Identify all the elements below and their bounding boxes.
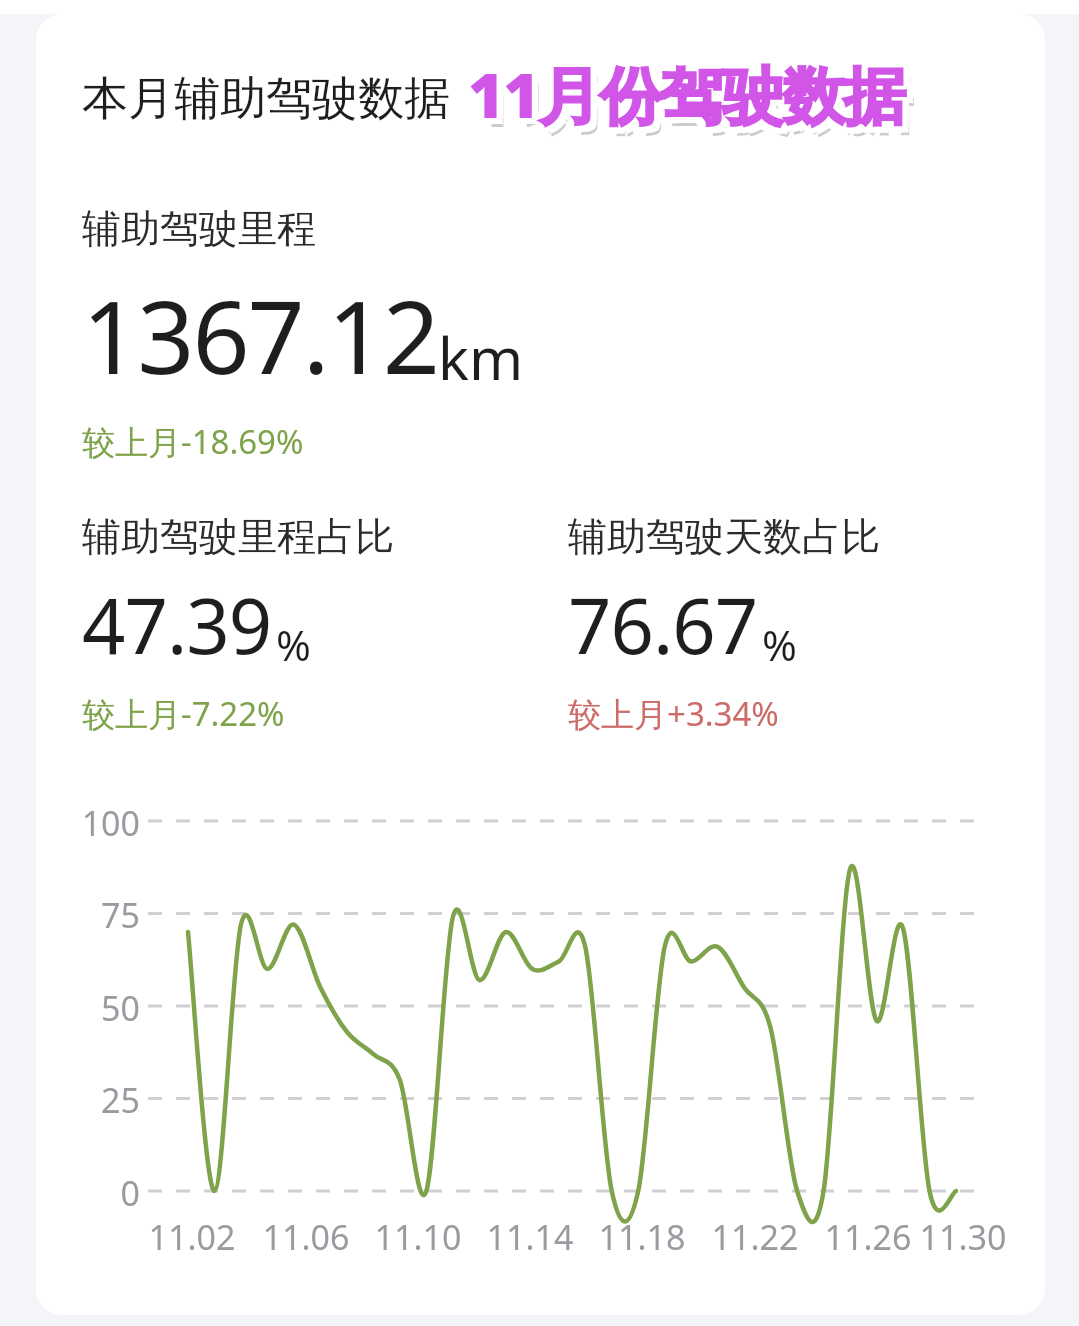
staticText: 11月份驾驶数据 [462, 52, 899, 137]
button[interactable]: 辅助驾驶天数占比 [568, 512, 880, 736]
staticText: 1367.12 [82, 267, 438, 403]
staticText: 11月份驾驶数据 [474, 46, 911, 131]
staticText: 0 [58, 1170, 140, 1216]
staticText: 76.67 [568, 573, 758, 677]
staticText: 11月份驾驶数据 [462, 58, 899, 143]
staticText: 11.14 [460, 1214, 600, 1260]
staticText: 11.26 [798, 1214, 938, 1260]
staticText: 100 [58, 800, 140, 846]
staticText: 11月份驾驶数据 [468, 58, 905, 143]
button[interactable]: 本月辅助驾驶数据 [82, 56, 905, 141]
staticText: 50 [58, 985, 140, 1031]
staticText: 11月份驾驶数据 [468, 46, 905, 131]
staticText: 11.02 [122, 1214, 262, 1260]
staticText: 47.39 [82, 573, 272, 677]
staticText: 辅助驾驶里程占比 [82, 512, 394, 561]
staticText: 75 [58, 892, 140, 938]
staticText: 11.06 [236, 1214, 376, 1260]
staticText: % [762, 616, 797, 673]
staticText: 11月份驾驶数据 [474, 58, 911, 143]
other: 11月份驾驶数据 [468, 52, 905, 137]
staticText: 11月份驾驶数据 [462, 46, 899, 131]
staticText: 11月份驾驶数据 [474, 52, 911, 137]
staticText: 辅助驾驶里程 [82, 204, 316, 253]
staticText: 较上月+3.34% [568, 691, 779, 736]
staticText: 本月辅助驾驶数据 [82, 70, 450, 128]
staticText: 11月份驾驶数据 [468, 52, 905, 137]
button[interactable]: 辅助驾驶里程占比 [82, 512, 394, 736]
staticText: 辅助驾驶天数占比 [568, 512, 880, 561]
staticText: 11.18 [572, 1214, 712, 1260]
staticText: 11.30 [893, 1214, 1033, 1260]
staticText: 较上月-7.22% [82, 691, 285, 736]
staticText: 25 [58, 1077, 140, 1123]
staticText: % [276, 616, 311, 673]
staticText: 11月份驾驶数据 [475, 61, 912, 146]
staticText: 较上月-18.69% [82, 419, 304, 464]
staticText: 11.22 [685, 1214, 825, 1260]
button[interactable]: 辅助驾驶里程 [82, 204, 524, 464]
staticText: km [438, 318, 524, 397]
staticText: 11.10 [348, 1214, 488, 1260]
